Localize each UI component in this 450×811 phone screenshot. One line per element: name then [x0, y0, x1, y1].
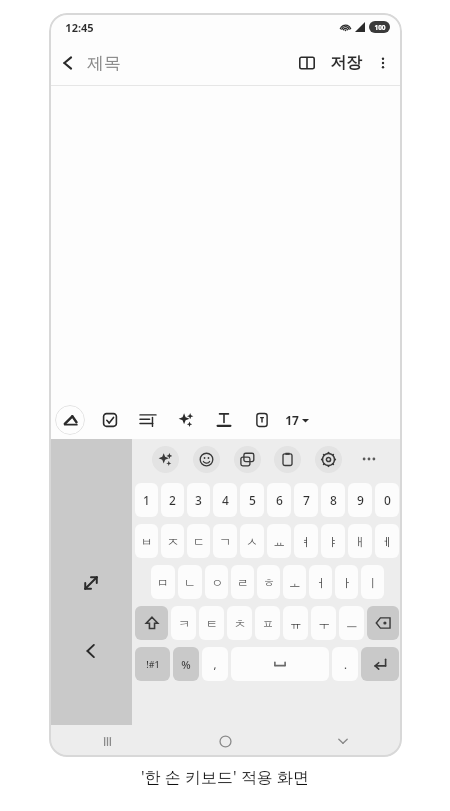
button[interactable]: !#1 [135, 647, 170, 681]
button[interactable]: ㅠ [283, 606, 308, 640]
button[interactable]: ㅓ [309, 565, 332, 599]
button[interactable]: ㅛ [267, 524, 291, 558]
button[interactable]: Expand keyboard [69, 561, 113, 605]
button[interactable]: ㅂ [135, 524, 158, 558]
button[interactable]: ㅔ [375, 524, 399, 558]
staticText: 제목 [87, 53, 121, 74]
staticText: 100 [374, 23, 386, 32]
button[interactable]: 5 [240, 483, 264, 517]
button[interactable]: More options [368, 48, 398, 78]
button[interactable]: . [332, 647, 358, 681]
button[interactable]: ㅑ [321, 524, 345, 558]
button[interactable]: Pen [55, 405, 85, 435]
staticText: 6 [276, 492, 283, 508]
staticText: 8 [330, 492, 337, 508]
button[interactable]: Hide keyboard [284, 725, 402, 757]
staticText: ㅍ [262, 616, 274, 631]
button[interactable]: ㅍ [255, 606, 280, 640]
button[interactable]: ㅅ [240, 524, 264, 558]
staticText: ㅣ [367, 575, 379, 590]
staticText: , [213, 657, 217, 672]
button[interactable]: 9 [348, 483, 372, 517]
staticText: ㅕ [300, 534, 312, 549]
button[interactable]: ㅌ [199, 606, 224, 640]
button[interactable]: Insert [249, 407, 275, 433]
button[interactable]: More [356, 446, 382, 472]
button[interactable]: Backspace [367, 606, 399, 640]
button[interactable]: GIF [234, 446, 261, 473]
button[interactable]: Stickers [152, 446, 179, 473]
button[interactable]: 1 [135, 483, 158, 517]
staticText: ㅛ [273, 534, 285, 549]
button[interactable]: Enter [361, 647, 399, 681]
button[interactable]: 0 [375, 483, 399, 517]
staticText: ㅑ [327, 534, 339, 549]
staticText: ㅈ [167, 534, 179, 549]
staticText: ㅌ [206, 616, 218, 631]
button[interactable]: ㅇ [205, 565, 228, 599]
button[interactable]: ㅏ [335, 565, 358, 599]
staticText: ㅎ [263, 575, 275, 590]
button[interactable]: 2 [161, 483, 184, 517]
staticText: 5 [249, 492, 256, 508]
button[interactable]: Back [49, 44, 87, 82]
button[interactable]: Clipboard [274, 446, 301, 473]
button[interactable]: ㅁ [151, 565, 175, 599]
staticText: 3 [195, 492, 202, 508]
button[interactable]: Text style [211, 407, 237, 433]
staticText: 저장 [330, 53, 362, 73]
staticText: 12:45 [65, 20, 94, 35]
button[interactable]: ㅜ [311, 606, 336, 640]
button[interactable]: Checklist [97, 407, 123, 433]
staticText: 2 [169, 492, 176, 508]
staticText: . [344, 657, 347, 672]
staticText: '한 손 키보드' 적용 화면 [141, 766, 309, 788]
button[interactable]: 8 [321, 483, 345, 517]
staticText: 4 [222, 492, 229, 508]
staticText: ㅗ [289, 575, 301, 590]
button[interactable]: Home [166, 725, 284, 757]
button[interactable]: 저장 [324, 53, 368, 73]
button[interactable]: ㅋ [171, 606, 196, 640]
button[interactable]: Recents [49, 725, 166, 757]
button[interactable]: Paragraph [135, 407, 161, 433]
button[interactable]: Space [231, 647, 329, 681]
staticText: 7 [303, 492, 310, 508]
button[interactable]: 3 [187, 483, 210, 517]
staticText: % [181, 657, 191, 672]
button[interactable]: ㅎ [257, 565, 280, 599]
button[interactable]: Shift [135, 606, 168, 640]
button[interactable]: ㄷ [187, 524, 210, 558]
button[interactable]: ㅊ [227, 606, 252, 640]
button[interactable]: ㄱ [213, 524, 237, 558]
button[interactable]: ㄴ [178, 565, 202, 599]
button[interactable]: Emoji [193, 446, 220, 473]
staticText: ㅠ [290, 616, 302, 631]
button[interactable]: ㅐ [348, 524, 372, 558]
button[interactable]: % [173, 647, 199, 681]
button[interactable]: ㅈ [161, 524, 184, 558]
button[interactable]: , [202, 647, 228, 681]
staticText: 0 [384, 492, 391, 508]
button[interactable]: Settings [315, 446, 342, 473]
button[interactable]: Reading view [290, 46, 324, 80]
staticText: 17 [285, 412, 299, 428]
button[interactable]: ㅗ [283, 565, 306, 599]
button[interactable]: 6 [267, 483, 291, 517]
staticText: ㅐ [354, 534, 366, 549]
button[interactable]: Effects [173, 407, 199, 433]
button[interactable]: 4 [213, 483, 237, 517]
button[interactable]: Move keyboard left [69, 629, 113, 673]
button[interactable]: ㅡ [339, 606, 364, 640]
button[interactable]: ㅕ [294, 524, 318, 558]
button[interactable]: 7 [294, 483, 318, 517]
button[interactable]: ㄹ [231, 565, 254, 599]
button[interactable]: 17 [285, 412, 309, 428]
staticText: ㅜ [318, 616, 330, 631]
staticText: 9 [357, 492, 364, 508]
button[interactable]: ㅣ [361, 565, 384, 599]
staticText: ㄷ [193, 534, 205, 549]
staticText: ㅂ [141, 534, 153, 549]
staticText: ㄹ [237, 575, 249, 590]
staticText: ㅊ [234, 616, 246, 631]
